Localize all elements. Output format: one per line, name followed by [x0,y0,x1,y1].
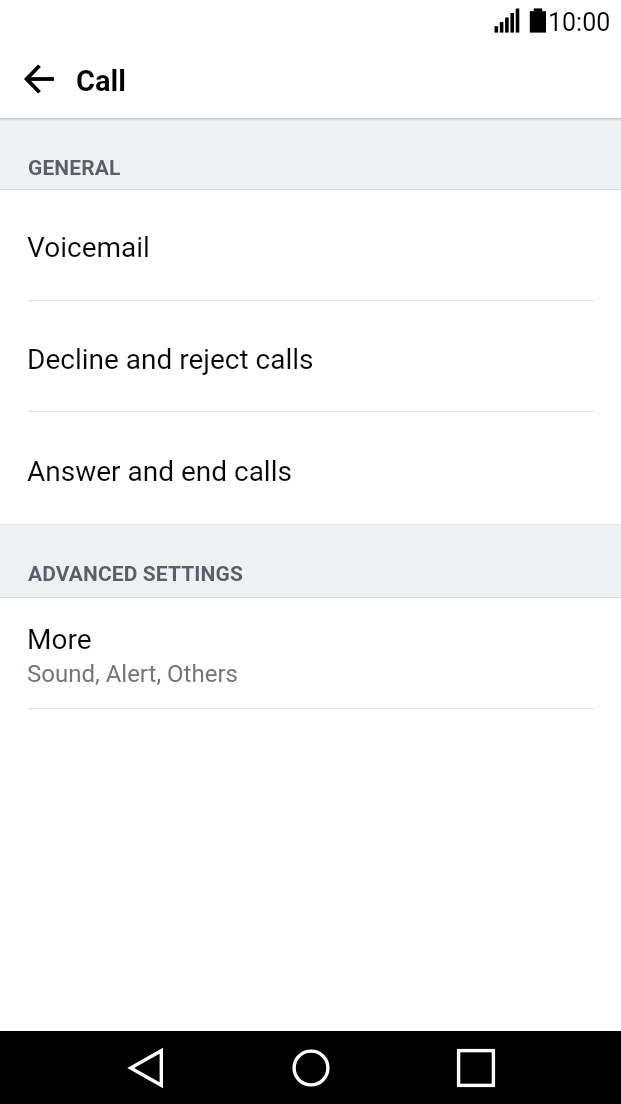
staticText: More [27,623,92,656]
staticText: Call [76,64,126,98]
button[interactable]: More [0,598,621,709]
staticText: GENERAL [28,156,121,181]
button[interactable]: Home [228,1031,393,1104]
button[interactable]: Decline and reject calls [0,301,621,412]
button[interactable]: Voicemail [0,190,621,301]
button[interactable]: Back [8,45,72,115]
button[interactable]: Recent apps [393,1031,558,1104]
button[interactable]: Answer and end calls [0,412,621,524]
staticText: Decline and reject calls [27,343,314,376]
staticText: Voicemail [27,231,150,264]
staticText: Answer and end calls [27,455,292,488]
staticText: Sound, Alert, Others [27,660,238,688]
staticText: 10:00 [548,8,611,37]
button[interactable]: Back [64,1031,228,1104]
staticText: ADVANCED SETTINGS [28,562,243,587]
